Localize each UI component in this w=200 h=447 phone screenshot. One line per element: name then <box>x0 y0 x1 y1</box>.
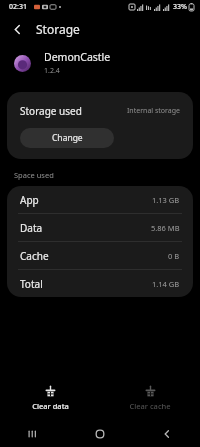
staticText: DemonCastle <box>44 50 111 64</box>
staticText: Cache <box>20 249 49 263</box>
staticText: 1.2.4 <box>44 66 60 76</box>
staticText: Internal storage <box>127 106 180 116</box>
staticText: Data <box>20 221 43 235</box>
staticText: Clear data <box>32 401 69 411</box>
staticText: 5.86 MB <box>151 223 180 233</box>
staticText: Total <box>20 277 43 291</box>
button[interactable]: Home <box>66 420 133 447</box>
button[interactable]: Change <box>20 128 114 148</box>
button[interactable]: Data <box>7 214 193 241</box>
staticText: 1.14 GB <box>152 279 180 289</box>
staticText: Clear cache <box>129 401 171 411</box>
button[interactable]: Total <box>7 270 193 297</box>
button[interactable]: Clear cache <box>100 380 200 411</box>
staticText: 0 B <box>168 251 180 261</box>
button[interactable]: Recents <box>0 420 66 447</box>
staticText: Storage <box>36 21 80 37</box>
staticText: 33% <box>173 2 187 12</box>
staticText: Space used <box>14 170 54 180</box>
button[interactable]: Clear data <box>0 380 100 411</box>
staticText: App <box>20 193 39 207</box>
staticText: Change <box>52 132 83 144</box>
staticText: Storage used <box>20 104 82 118</box>
staticText: 1.13 GB <box>152 195 180 205</box>
button[interactable]: Cache <box>7 242 193 269</box>
button[interactable]: Back <box>4 16 30 42</box>
button[interactable]: Back <box>133 420 200 447</box>
staticText: 02:31 <box>9 2 27 12</box>
button[interactable]: App <box>7 186 193 213</box>
